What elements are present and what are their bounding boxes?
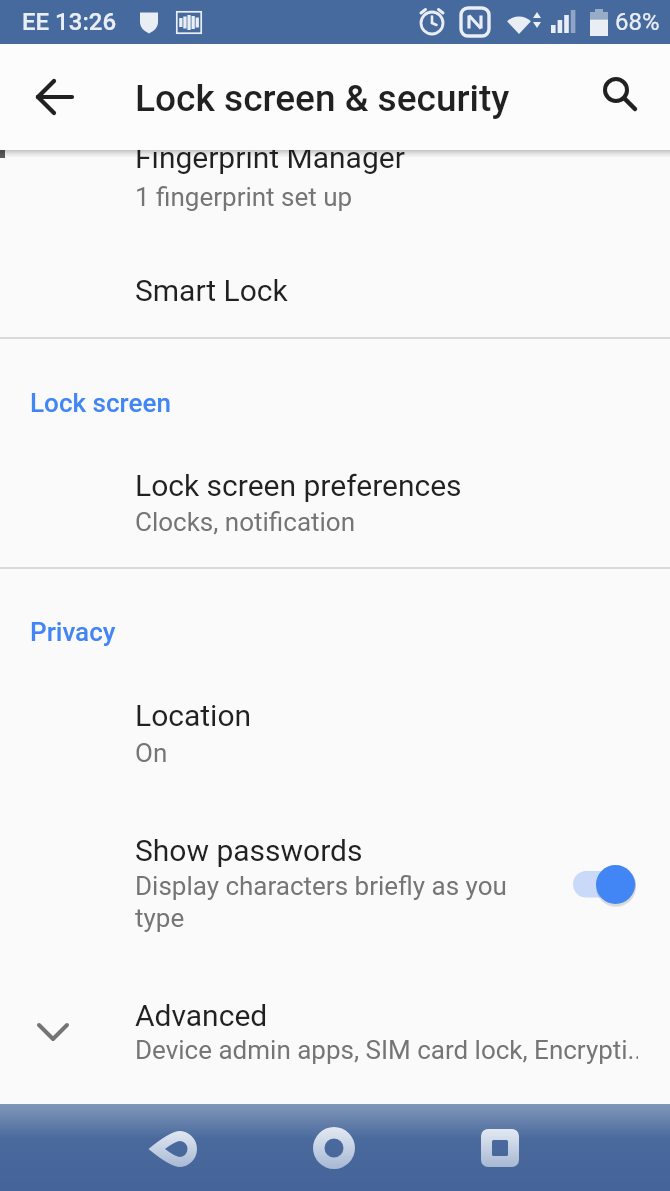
- staticText: Fingerprint Manager: [135, 150, 405, 175]
- button[interactable]: [0, 810, 670, 940]
- button[interactable]: [0, 150, 670, 226]
- staticText: 1 fingerprint set up: [135, 182, 353, 212]
- staticText: Lock screen & security: [135, 77, 510, 120]
- button[interactable]: [0, 442, 670, 567]
- button[interactable]: [20, 62, 90, 132]
- staticText: Advanced: [135, 998, 268, 1033]
- button[interactable]: [465, 1113, 535, 1183]
- staticText: On: [135, 738, 168, 768]
- button[interactable]: [0, 250, 670, 337]
- button[interactable]: [138, 1114, 208, 1184]
- staticText: EE 13:26: [22, 8, 117, 36]
- staticText: 68%: [615, 8, 660, 36]
- button[interactable]: [568, 858, 644, 912]
- button[interactable]: [586, 62, 656, 132]
- staticText: Lock screen: [30, 388, 171, 418]
- staticText: Location: [135, 698, 252, 733]
- staticText: Show passwords: [135, 833, 363, 868]
- staticText: Lock screen preferences: [135, 468, 462, 503]
- staticText: Smart Lock: [135, 273, 288, 308]
- staticText: Privacy: [30, 617, 116, 647]
- button[interactable]: [299, 1113, 369, 1183]
- button[interactable]: [0, 674, 670, 784]
- staticText: Clocks, notification: [135, 507, 356, 537]
- button[interactable]: [0, 970, 670, 1104]
- staticText: Display characters briefly as you type: [135, 871, 555, 934]
- staticText: Device admin apps, SIM card lock, Encryp…: [135, 1035, 638, 1065]
